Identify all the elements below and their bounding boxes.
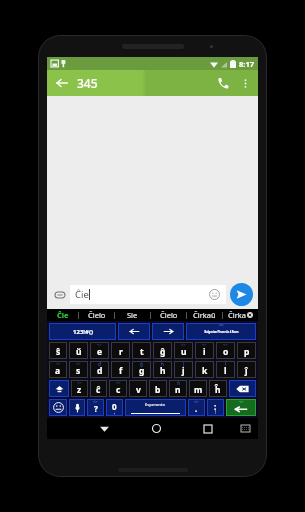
button[interactable]: Move right bbox=[152, 323, 184, 340]
button[interactable]: ! bbox=[207, 399, 224, 416]
button[interactable]: <> bbox=[71, 380, 88, 397]
button[interactable]: ars bbox=[186, 323, 256, 340]
staticText: l bbox=[224, 365, 227, 377]
staticText: u bbox=[181, 346, 187, 358]
button[interactable]: p bbox=[237, 342, 256, 359]
button[interactable]: <> bbox=[90, 342, 109, 359]
button[interactable]: ŝ bbox=[49, 342, 67, 359]
button[interactable]: ń bbox=[169, 380, 187, 397]
button[interactable]: Home bbox=[130, 418, 182, 439]
staticText: ĺ bbox=[225, 361, 227, 367]
button[interactable]: Enter bbox=[226, 399, 256, 416]
button[interactable]: , bbox=[106, 399, 123, 416]
staticText: c bbox=[116, 384, 121, 396]
staticText: Esperanto bbox=[145, 402, 166, 407]
button[interactable]: Voice input bbox=[69, 399, 85, 416]
staticText: <> bbox=[202, 342, 207, 347]
button[interactable]: ŭ bbox=[69, 342, 88, 359]
staticText: t bbox=[140, 346, 144, 358]
button[interactable]: k bbox=[195, 361, 214, 378]
button[interactable]: ĥ bbox=[209, 380, 227, 397]
staticText: k bbox=[202, 365, 208, 377]
button[interactable]: <> bbox=[109, 380, 127, 397]
button[interactable]: Back bbox=[52, 73, 72, 93]
button[interactable]: <> bbox=[216, 342, 235, 359]
button[interactable]: Esperanto bbox=[125, 399, 186, 416]
staticText: j bbox=[182, 365, 185, 377]
staticText: <> bbox=[181, 342, 186, 347]
staticText: , bbox=[114, 409, 116, 415]
staticText: 345 bbox=[77, 75, 98, 91]
button[interactable]: t bbox=[132, 342, 151, 359]
button[interactable]: ĉ bbox=[90, 380, 107, 397]
staticText: ǵ bbox=[140, 361, 143, 367]
button[interactable]: ď bbox=[90, 361, 109, 378]
staticText: ń bbox=[177, 380, 180, 386]
staticText: o bbox=[223, 346, 229, 358]
button[interactable]: <> bbox=[49, 361, 67, 378]
staticText: <> bbox=[76, 361, 81, 366]
button[interactable]: <> bbox=[69, 361, 88, 378]
staticText: ŭ bbox=[76, 346, 82, 358]
button[interactable]: Switch keyboard bbox=[234, 418, 256, 439]
button[interactable]: Send bbox=[230, 283, 253, 306]
staticText: r bbox=[119, 346, 123, 358]
staticText: a bbox=[55, 365, 61, 377]
button[interactable]: Ĉirkaŭ bbox=[187, 309, 222, 321]
button[interactable]: Ĉielo bbox=[79, 309, 114, 321]
staticText: ! bbox=[215, 409, 217, 415]
button[interactable]: <> bbox=[188, 399, 205, 416]
button[interactable]: Shift bbox=[49, 380, 69, 397]
button[interactable]: m bbox=[189, 380, 207, 397]
button[interactable]: Ĉie bbox=[47, 309, 78, 321]
staticText: <> bbox=[56, 361, 61, 366]
staticText: Ĉielo bbox=[160, 310, 178, 320]
button[interactable]: v bbox=[129, 380, 147, 397]
staticText: v bbox=[136, 384, 141, 396]
button[interactable]: 123!#() bbox=[49, 323, 116, 340]
button[interactable]: ǵ bbox=[132, 361, 151, 378]
staticText: <> bbox=[97, 342, 102, 347]
button[interactable]: Move left bbox=[118, 323, 150, 340]
staticText: Sie bbox=[127, 310, 138, 320]
button[interactable]: More options bbox=[237, 75, 253, 91]
staticText: ars bbox=[219, 323, 224, 327]
staticText: 123!#() bbox=[73, 328, 93, 336]
staticText: : bbox=[214, 401, 217, 412]
button[interactable]: <> bbox=[87, 399, 104, 416]
button[interactable]: r bbox=[111, 342, 130, 359]
button[interactable]: ĵ bbox=[237, 361, 256, 378]
staticText: Bulgarian Phonetic 4 Rows bbox=[204, 330, 239, 334]
button[interactable]: Ĉie bbox=[70, 285, 226, 304]
staticText: <> bbox=[77, 380, 82, 385]
button[interactable]: Ĉielo bbox=[151, 309, 186, 321]
button[interactable]: ĵ bbox=[174, 361, 193, 378]
staticText: <> bbox=[116, 380, 121, 385]
button[interactable]: Back bbox=[78, 418, 130, 439]
staticText: Ĉirkaŭ bbox=[193, 310, 216, 320]
button[interactable]: Call bbox=[213, 73, 233, 93]
staticText: s bbox=[76, 365, 81, 377]
button[interactable]: ĝ bbox=[153, 342, 172, 359]
staticText: ĝ bbox=[160, 346, 166, 358]
button[interactable]: <> bbox=[195, 342, 214, 359]
button[interactable]: Attach bbox=[51, 286, 68, 303]
staticText: f bbox=[119, 365, 123, 377]
button[interactable]: b bbox=[149, 380, 167, 397]
staticText: Ĉirka bbox=[228, 310, 246, 320]
staticText: ŝ bbox=[56, 346, 61, 358]
button[interactable]: ĥ bbox=[153, 361, 172, 378]
button[interactable]: ĺ bbox=[216, 361, 235, 378]
button[interactable]: f bbox=[111, 361, 130, 378]
button[interactable]: <> bbox=[174, 342, 193, 359]
button[interactable]: Backspace bbox=[229, 380, 256, 397]
button[interactable]: Sie bbox=[115, 309, 150, 321]
staticText: z bbox=[77, 384, 82, 396]
staticText: ď bbox=[98, 361, 101, 367]
button[interactable]: Recent apps bbox=[182, 418, 234, 439]
staticText: . bbox=[195, 403, 198, 414]
staticText: 8:17 bbox=[239, 59, 254, 69]
button[interactable]: Ĉirka bbox=[223, 309, 258, 321]
button[interactable]: Emoji bbox=[49, 399, 67, 416]
button[interactable]: Emoji bbox=[208, 288, 221, 301]
